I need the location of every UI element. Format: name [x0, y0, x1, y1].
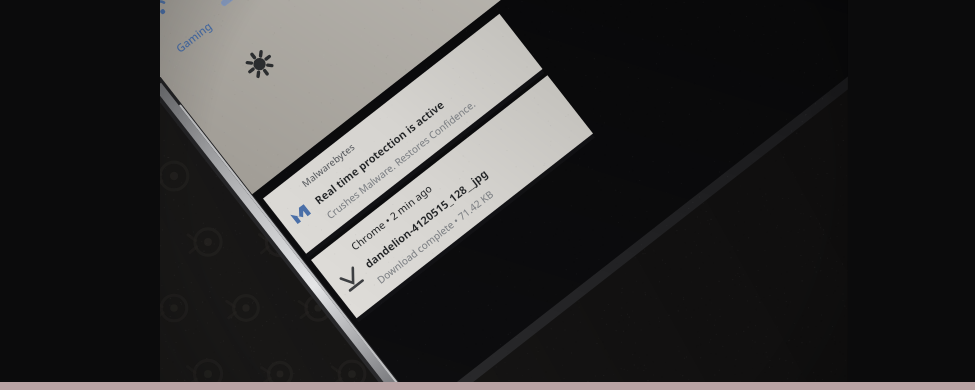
button[interactable]: Gaming Wi-Fi tile [168, 32, 228, 98]
button[interactable]: Malwarebytes: Real time protection is ac… [276, 96, 486, 192]
button[interactable]: Chrome download complete, dandelion-4120… [360, 156, 578, 256]
button[interactable]: Bluetooth tile [228, 0, 284, 54]
